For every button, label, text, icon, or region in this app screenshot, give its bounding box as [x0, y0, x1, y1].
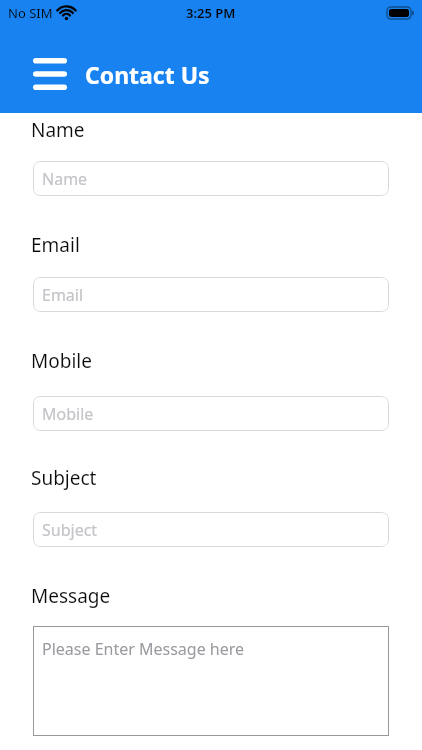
staticText: Message	[31, 583, 111, 609]
button[interactable]: Mobile	[33, 396, 389, 431]
staticText: Mobile	[42, 403, 94, 425]
staticText: Please Enter Message here	[42, 638, 245, 660]
staticText: Subject	[31, 465, 97, 491]
staticText: Contact Us	[85, 59, 210, 90]
button[interactable]: Please Enter Message here	[33, 626, 389, 736]
button[interactable]: Email	[33, 277, 389, 312]
staticText: Subject	[42, 519, 98, 541]
staticText: Name	[42, 168, 88, 190]
button[interactable]	[33, 58, 67, 91]
staticText: No SIM	[8, 4, 53, 22]
button[interactable]: Name	[33, 161, 389, 196]
staticText: Name	[31, 117, 85, 143]
staticText: 3:25 PM	[186, 4, 236, 22]
staticText: Email	[42, 284, 84, 306]
button[interactable]: Subject	[33, 512, 389, 547]
staticText: Mobile	[31, 348, 92, 374]
staticText: Email	[31, 232, 80, 258]
